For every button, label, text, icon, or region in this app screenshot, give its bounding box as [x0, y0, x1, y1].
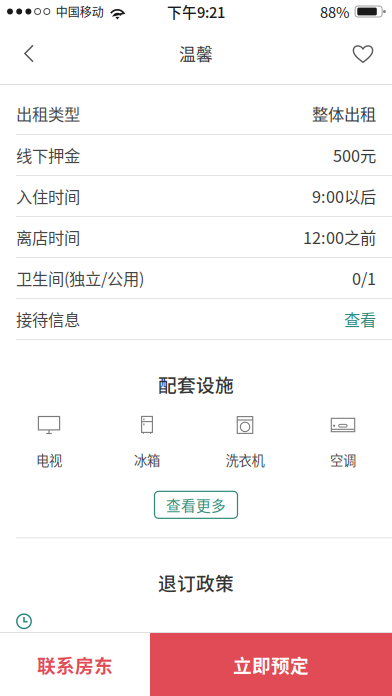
staticText: 查看更多 — [166, 494, 226, 515]
staticText: 入住时间 — [16, 184, 80, 208]
staticText: 线下押金 — [16, 143, 80, 167]
button[interactable]: 接待信息 — [0, 299, 392, 339]
staticText: 退订政策 — [158, 569, 234, 596]
staticText: 下午9:21 — [167, 1, 225, 22]
staticText: 88% — [320, 1, 350, 22]
staticText: 12:00之前 — [303, 225, 376, 249]
button[interactable]: 查看更多 — [154, 491, 237, 518]
staticText: 冰箱 — [134, 450, 160, 469]
staticText: 洗衣机 — [225, 450, 264, 469]
staticText: 0/1 — [352, 266, 376, 290]
staticText: 查看 — [344, 307, 376, 331]
staticText: 立即预定 — [233, 651, 309, 678]
button[interactable]: 立即预定 — [150, 633, 392, 696]
button[interactable]: 收藏 — [334, 23, 392, 84]
staticText: 电视 — [36, 450, 62, 469]
staticText: 中国移动 — [56, 3, 104, 20]
staticText: 温馨 — [179, 41, 213, 65]
staticText: 空调 — [330, 450, 356, 469]
staticText: 配套设施 — [158, 370, 234, 397]
staticText: 整体出租 — [312, 102, 376, 125]
button[interactable]: 返回 — [0, 23, 58, 84]
button[interactable]: 联系房东 — [0, 633, 150, 696]
staticText: 卫生间(独立/公用) — [16, 266, 144, 290]
staticText: 9:00以后 — [312, 184, 376, 208]
staticText: 接待信息 — [16, 307, 80, 331]
staticText: 出租类型 — [16, 102, 80, 125]
staticText: 离店时间 — [16, 225, 80, 249]
staticText: 联系房东 — [37, 651, 113, 678]
staticText: 500元 — [333, 143, 376, 167]
